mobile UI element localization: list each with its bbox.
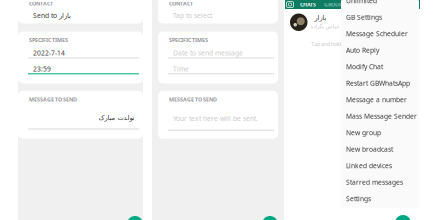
button[interactable]: Unlimited [341, 0, 419, 9]
button[interactable]: New message [127, 216, 143, 220]
staticText: Auto Reply [346, 46, 379, 55]
staticText: 23:59 [33, 64, 51, 73]
staticText: 2022-7-14 [33, 49, 65, 57]
staticText: Modify Chat [346, 62, 383, 71]
button[interactable]: Auto Reply [341, 42, 419, 58]
staticText: عباس بگزاده [310, 23, 339, 30]
staticText: Linked devices [346, 161, 392, 170]
staticText: تولدت مبارک [98, 114, 134, 121]
staticText: Mass Message Sender [346, 112, 417, 121]
button[interactable]: Mass Message Sender [341, 108, 419, 124]
button[interactable]: Linked devices [341, 157, 419, 174]
staticText: Your text here will be sent. [173, 114, 258, 123]
staticText: CONTACT [29, 0, 53, 7]
button[interactable]: New group [341, 124, 419, 141]
staticText: Unlimited [346, 0, 377, 5]
staticText: New broadcast [346, 145, 393, 154]
staticText: New group [346, 128, 381, 137]
button[interactable]: Restart GBWhatsApp [341, 75, 419, 91]
staticText: Date to send message [173, 49, 243, 57]
button[interactable]: Modify Chat [341, 58, 419, 75]
staticText: Tap to select [173, 11, 212, 20]
staticText: CONTACT [169, 0, 193, 7]
staticText: MESSAGE TO SEND [29, 96, 77, 103]
staticText: Tap and hold a [311, 40, 345, 48]
button[interactable]: GB Settings [341, 9, 419, 25]
staticText: GB Settings [346, 13, 382, 22]
staticText: CHATS [300, 1, 316, 8]
staticText: Starred messages [346, 178, 403, 187]
staticText: Message Scheduler [346, 29, 408, 38]
button[interactable]: Message Scheduler [341, 25, 419, 42]
staticText: بازار [314, 14, 326, 22]
staticText: Time [173, 64, 189, 73]
button[interactable]: Message a number [341, 91, 419, 108]
button[interactable]: New broadcast [341, 141, 419, 157]
button[interactable]: New chat [395, 215, 411, 220]
button[interactable]: New message [262, 216, 278, 220]
staticText: Restart GBWhatsApp [346, 79, 410, 88]
staticText: SPECIFIC TIMES [169, 36, 208, 44]
staticText: GROUPS [324, 1, 345, 8]
staticText: Send to بازار [33, 11, 71, 20]
staticText: Message a number [346, 95, 407, 104]
button[interactable]: Settings [341, 190, 419, 207]
staticText: SPECIFIC TIMES [29, 36, 68, 44]
staticText: Settings [346, 194, 371, 203]
button[interactable]: Starred messages [341, 174, 419, 190]
staticText: MESSAGE TO SEND [169, 96, 217, 103]
